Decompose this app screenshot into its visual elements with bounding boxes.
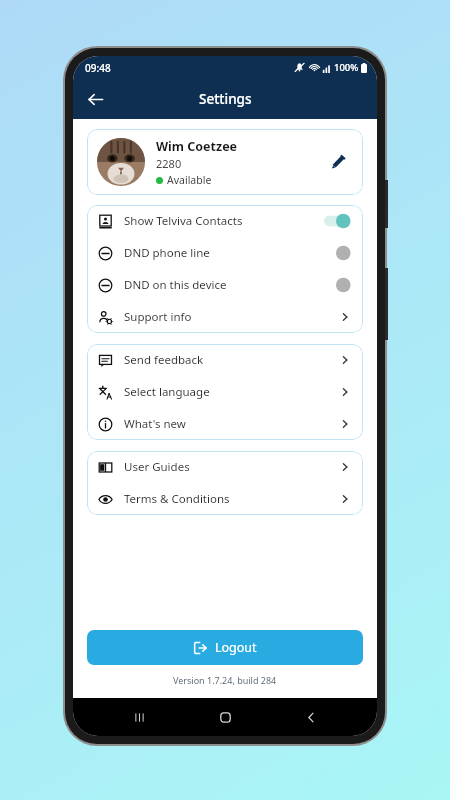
staticText: DND phone line [124, 245, 324, 261]
staticText: Select language [124, 384, 340, 400]
staticText: 09:48 [85, 61, 111, 75]
staticText: Show Telviva Contacts [124, 213, 324, 229]
staticText: Logout [215, 639, 257, 656]
staticText: What's new [124, 416, 340, 432]
button[interactable]: What's new [87, 408, 363, 440]
staticText: 100% [334, 61, 359, 74]
button[interactable]: Edit profile [323, 147, 353, 177]
button[interactable]: Support info [87, 301, 363, 333]
staticText: 2280 [156, 156, 182, 171]
staticText: Available [167, 173, 212, 187]
button[interactable]: Wim Coetzee [87, 129, 363, 195]
staticText: Terms & Conditions [124, 491, 340, 507]
button[interactable]: Select language [87, 376, 363, 408]
staticText: Wim Coetzee [156, 138, 238, 155]
button[interactable]: Back [79, 83, 111, 115]
staticText: Version 1.7.24, build 284 [173, 674, 277, 686]
button[interactable]: Terms & Conditions [87, 483, 363, 515]
staticText: Support info [124, 309, 340, 325]
button[interactable]: User Guides [87, 451, 363, 483]
button[interactable]: Show Telviva Contacts [87, 205, 363, 237]
button[interactable]: DND on this device [87, 269, 363, 301]
staticText: DND on this device [124, 277, 324, 293]
staticText: Send feedback [124, 352, 340, 368]
button[interactable]: DND phone line [87, 237, 363, 269]
button[interactable]: Send feedback [87, 344, 363, 376]
staticText: Settings [199, 90, 252, 108]
staticText: User Guides [124, 459, 340, 475]
button[interactable]: Home [205, 698, 245, 736]
button[interactable]: Recent apps [119, 698, 159, 736]
button[interactable]: Back [291, 698, 331, 736]
button[interactable]: Logout [87, 630, 363, 665]
